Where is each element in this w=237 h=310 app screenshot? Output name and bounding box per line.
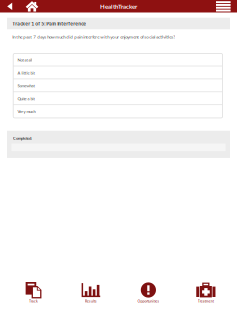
- staticText: Not at all: [17, 57, 32, 62]
- button[interactable]: Results: [62, 281, 120, 310]
- button[interactable]: Not at all: [13, 53, 223, 66]
- staticText: Tracker 1 of 5: Pain Interference: [12, 21, 86, 27]
- button[interactable]: Home: [19, 0, 45, 13]
- button[interactable]: Quite a bit: [13, 92, 223, 105]
- staticText: Very much: [17, 109, 35, 114]
- staticText: Somewhat: [17, 83, 34, 88]
- button[interactable]: Somewhat: [13, 79, 223, 92]
- button[interactable]: Opportunities: [120, 281, 177, 310]
- button[interactable]: Track: [5, 281, 62, 310]
- staticText: A little bit: [17, 70, 34, 75]
- staticText: In the past 7 days how much did pain int…: [12, 34, 175, 39]
- button[interactable]: Back: [0, 0, 19, 13]
- staticText: Completed:: [13, 136, 32, 141]
- staticText: Quite a bit: [17, 96, 34, 101]
- staticText: Opportunities: [137, 299, 159, 303]
- staticText: Track: [29, 299, 38, 303]
- button[interactable]: Menu: [213, 0, 234, 13]
- staticText: Results: [85, 299, 97, 303]
- button[interactable]: Treatment: [177, 281, 235, 310]
- button[interactable]: A little bit: [13, 66, 223, 79]
- staticText: Treatment: [198, 299, 214, 303]
- button[interactable]: Very much: [13, 105, 223, 118]
- staticText: HealthTracker: [100, 3, 137, 10]
